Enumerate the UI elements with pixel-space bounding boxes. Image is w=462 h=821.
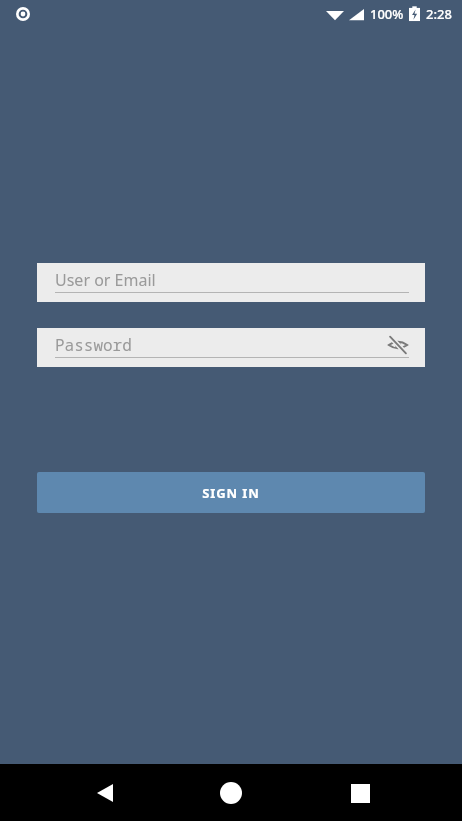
staticText: User or Email xyxy=(55,269,156,291)
staticText: 100% xyxy=(370,5,404,23)
button[interactable]: Home xyxy=(207,769,255,817)
button[interactable]: Password xyxy=(37,328,425,367)
button[interactable]: Toggle password visibility xyxy=(385,332,411,358)
button[interactable]: Back xyxy=(81,769,129,817)
staticText: 2:28 xyxy=(426,5,452,23)
staticText: Password xyxy=(55,334,132,356)
button[interactable]: User or Email xyxy=(37,263,425,302)
staticText: SIGN IN xyxy=(202,484,260,502)
button[interactable]: SIGN IN xyxy=(37,472,425,513)
button[interactable]: Recent apps xyxy=(336,769,384,817)
